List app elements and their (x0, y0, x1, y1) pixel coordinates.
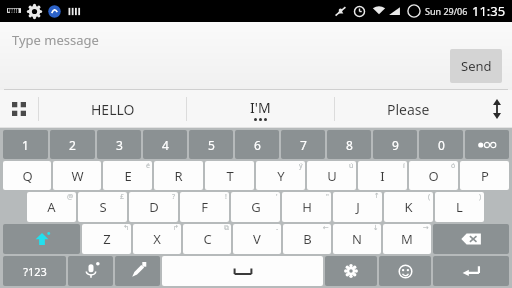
button[interactable]: X (133, 224, 181, 254)
staticText: ó (451, 161, 456, 171)
staticText: ⧉ (224, 224, 229, 231)
staticText: O (428, 167, 439, 185)
button[interactable]: F (180, 192, 229, 222)
staticText: 7 (300, 137, 307, 153)
staticText: T (226, 167, 234, 185)
button[interactable]: I'M (187, 90, 334, 128)
staticText: é (146, 161, 150, 171)
button[interactable]: T (205, 161, 254, 190)
button[interactable]: More (465, 130, 509, 159)
staticText: E (124, 167, 132, 185)
button[interactable]: Expand suggestions (482, 90, 512, 128)
button[interactable]: G (231, 192, 280, 222)
staticText: H (302, 198, 312, 216)
button[interactable]: L (435, 192, 484, 222)
button[interactable]: Toolbar (0, 90, 38, 128)
staticText: ↓ (373, 224, 379, 232)
staticText: D (149, 198, 159, 216)
staticText: ↑ (374, 192, 380, 200)
button[interactable]: Emoji (379, 256, 431, 286)
staticText: S (99, 198, 107, 216)
staticText: " (326, 192, 329, 202)
button[interactable]: Space (162, 256, 323, 286)
button[interactable]: 6 (235, 130, 279, 159)
button[interactable]: Shift (3, 224, 80, 254)
staticText: - (276, 224, 279, 234)
staticText: A (47, 198, 56, 216)
staticText: Q (22, 167, 33, 185)
button[interactable]: Settings (325, 256, 377, 286)
staticText: B (303, 230, 312, 248)
staticText: ? (172, 192, 176, 202)
button[interactable]: 8 (327, 130, 371, 159)
button[interactable]: Backspace (433, 224, 509, 254)
button[interactable]: U (307, 161, 356, 190)
button[interactable]: 4 (143, 130, 187, 159)
staticText: ý (299, 161, 303, 171)
button[interactable]: H (282, 192, 331, 222)
staticText: ( (428, 192, 431, 202)
button[interactable]: HELLO (39, 90, 186, 128)
staticText: 0 (438, 137, 445, 153)
staticText: 11:35 (472, 2, 506, 20)
staticText: ú (349, 161, 354, 171)
button[interactable]: J (333, 192, 382, 222)
staticText: Please (387, 100, 430, 119)
button[interactable]: D (129, 192, 178, 222)
button[interactable]: ?123 (3, 256, 66, 286)
staticText: I (380, 167, 385, 185)
staticText: F (201, 198, 208, 216)
button[interactable]: Z (82, 224, 131, 254)
staticText: ' (276, 192, 278, 202)
staticText: HELLO (91, 100, 135, 119)
staticText: I'M (250, 98, 271, 117)
button[interactable]: 1 (3, 130, 48, 159)
button[interactable]: C (183, 224, 231, 254)
staticText: 8 (346, 137, 353, 153)
button[interactable]: 2 (50, 130, 95, 159)
staticText: X (153, 230, 161, 248)
button[interactable]: 5 (189, 130, 233, 159)
staticText: Send (461, 57, 492, 75)
staticText: J (356, 198, 360, 216)
staticText: ?123 (23, 264, 47, 279)
button[interactable]: O (409, 161, 458, 190)
staticText: Z (103, 230, 111, 248)
staticText: K (404, 198, 413, 216)
button[interactable]: Enter (433, 256, 509, 286)
button[interactable]: B (283, 224, 331, 254)
button[interactable]: Y (256, 161, 305, 190)
staticText: ! (225, 192, 227, 202)
staticText: M (401, 230, 413, 248)
button[interactable]: 0 (419, 130, 463, 159)
button[interactable]: M (383, 224, 431, 254)
button[interactable]: I (358, 161, 407, 190)
button[interactable]: 3 (97, 130, 141, 159)
button[interactable]: S (78, 192, 127, 222)
staticText: ← (323, 224, 329, 232)
staticText: 1 (22, 137, 29, 153)
button[interactable]: Please (335, 90, 482, 128)
staticText: ↱ (173, 224, 179, 232)
button[interactable]: Type message (12, 31, 99, 49)
staticText: V (253, 230, 261, 248)
button[interactable]: A (27, 192, 76, 222)
staticText: U (327, 167, 337, 185)
button[interactable]: V (233, 224, 281, 254)
staticText: £ (120, 192, 125, 202)
button[interactable]: N (333, 224, 381, 254)
staticText: G (251, 198, 261, 216)
button[interactable]: K (384, 192, 433, 222)
button[interactable]: Q (3, 161, 51, 190)
staticText: P (481, 167, 489, 185)
button[interactable]: P (460, 161, 509, 190)
button[interactable]: R (154, 161, 203, 190)
button[interactable]: Handwriting (115, 256, 160, 286)
button[interactable]: 7 (281, 130, 325, 159)
button[interactable]: E (103, 161, 152, 190)
button[interactable]: Send (450, 49, 502, 83)
button[interactable]: W (53, 161, 101, 190)
staticText: ↰ (123, 224, 129, 232)
button[interactable]: 9 (373, 130, 417, 159)
button[interactable]: Voice input (68, 256, 113, 286)
